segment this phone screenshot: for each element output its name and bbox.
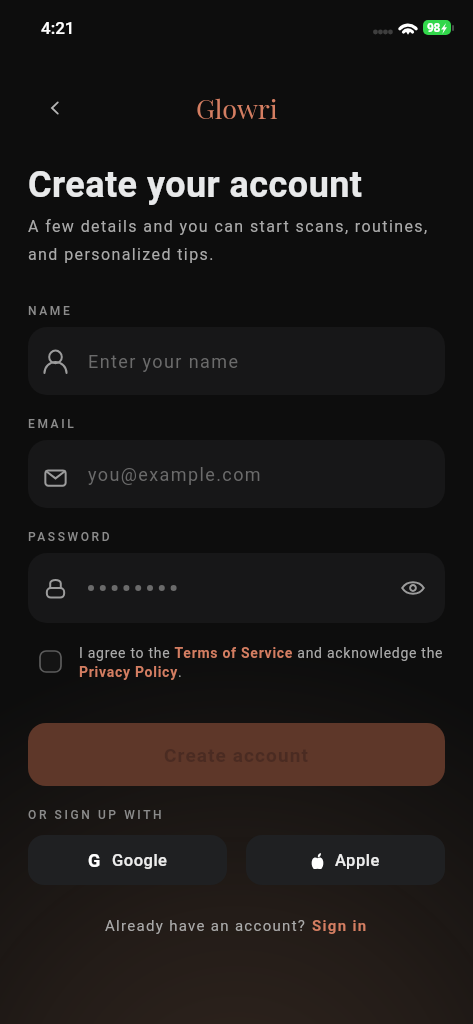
- button[interactable]: Back: [33, 86, 77, 130]
- staticText: OR SIGN UP WITH: [28, 808, 165, 822]
- button[interactable]: Create account: [28, 723, 445, 786]
- staticText: Apple: [335, 851, 380, 870]
- staticText: you@example.com: [88, 464, 263, 485]
- button[interactable]: you@example.com: [28, 440, 445, 508]
- staticText: EMAIL: [28, 417, 77, 431]
- button[interactable]: Show password: [28, 553, 445, 623]
- button[interactable]: G: [28, 835, 227, 885]
- staticText: Create your account: [28, 164, 363, 206]
- button[interactable]: Apple: [246, 835, 445, 885]
- button[interactable]: Enter your name: [28, 327, 445, 395]
- staticText: A few details and you can start scans, r…: [28, 217, 429, 264]
- staticText: I agree to the Terms of Service and ackn…: [79, 645, 448, 681]
- staticText: Google: [112, 851, 168, 870]
- staticText: PASSWORD: [28, 530, 113, 544]
- button[interactable]: Show password: [397, 572, 429, 604]
- staticText: Glowri: [196, 90, 278, 126]
- staticText: 98: [427, 21, 441, 35]
- staticText: Already have an account?: [105, 917, 312, 935]
- staticText: Create account: [164, 744, 309, 766]
- staticText: Enter your name: [88, 351, 240, 372]
- staticText: Sign in: [312, 917, 368, 935]
- button[interactable]: I agree to the Terms of Service and ackn…: [40, 645, 448, 681]
- staticText: 4:21: [41, 18, 75, 38]
- staticText: NAME: [28, 304, 73, 318]
- button[interactable]: Sign in: [312, 917, 368, 935]
- staticText: G: [88, 850, 101, 871]
